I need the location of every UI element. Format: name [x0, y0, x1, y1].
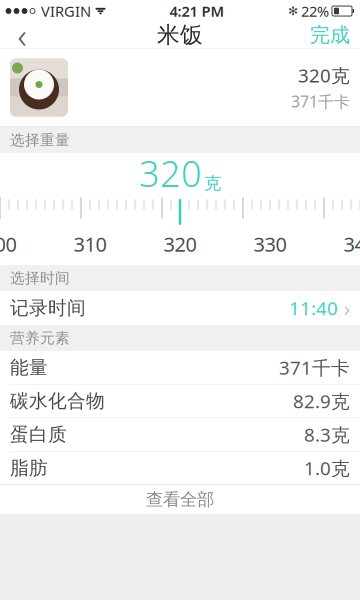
staticText: 营养元素 — [10, 329, 70, 347]
staticText: 310 — [73, 231, 106, 257]
staticText: 11:40 — [289, 296, 338, 320]
staticText: 300 — [0, 231, 16, 257]
staticText: 8.3克 — [304, 422, 350, 447]
staticText: 320 — [163, 231, 196, 257]
staticText: › — [344, 293, 350, 323]
staticText: 蛋白质 — [10, 423, 67, 446]
button[interactable]: 记录时间 — [0, 291, 360, 325]
button[interactable]: 完成 — [300, 22, 360, 48]
staticText: 记录时间 — [10, 296, 86, 319]
staticText: 4:21 PM — [169, 1, 224, 21]
staticText: 371千卡 — [291, 91, 350, 112]
staticText: 82.9克 — [293, 389, 350, 413]
staticText: 330 — [253, 231, 286, 257]
staticText: 22% — [301, 1, 329, 21]
staticText: ✻ — [288, 4, 298, 18]
staticText: 340 — [343, 231, 360, 257]
button[interactable]: Back — [0, 22, 44, 48]
staticText: 320 — [139, 149, 202, 197]
button[interactable]: 查看全部 — [0, 485, 360, 514]
staticText: 米饭 — [157, 21, 203, 49]
staticText: VIRGIN — [41, 1, 91, 21]
staticText: 371千卡 — [279, 355, 350, 380]
staticText: 选择时间 — [10, 269, 70, 287]
staticText: 碳水化合物 — [10, 389, 105, 412]
staticText: 320克 — [298, 63, 350, 88]
staticText: ‹ — [17, 12, 26, 58]
staticText: 脂肪 — [10, 456, 48, 479]
staticText: 能量 — [10, 356, 48, 379]
staticText: 完成 — [310, 23, 350, 47]
staticText: 1.0克 — [304, 456, 350, 480]
staticText: 选择重量 — [10, 131, 70, 149]
staticText: 查看全部 — [146, 489, 214, 510]
staticText: 克 — [204, 173, 221, 194]
